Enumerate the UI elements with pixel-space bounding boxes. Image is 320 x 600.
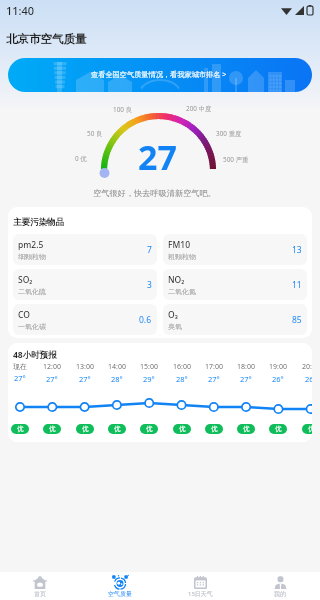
staticText: 二氧化硫 (18, 287, 46, 296)
staticText: 7 (147, 244, 152, 256)
staticText: 200 中度 (186, 104, 212, 113)
button[interactable]: 优 (108, 424, 126, 434)
staticText: 首页 (34, 590, 46, 598)
staticText: NO₂ (168, 274, 185, 286)
button[interactable]: NO₂ (163, 269, 307, 300)
button[interactable]: 优 (269, 424, 287, 434)
staticText: 优 (308, 425, 312, 433)
staticText: 空气质量 (108, 590, 132, 598)
staticText: 优 (243, 425, 250, 433)
staticText: 北京市空气质量 (6, 32, 87, 46)
staticText: 500 严重 (223, 155, 249, 164)
button[interactable]: 优 (11, 424, 29, 434)
staticText: 我的 (274, 590, 286, 598)
staticText: 27° (208, 374, 220, 384)
staticText: 48小时预报 (13, 349, 57, 361)
button[interactable]: 优 (76, 424, 94, 434)
staticText: 优 (49, 425, 56, 433)
staticText: 臭氧 (168, 322, 182, 331)
button[interactable]: 优 (237, 424, 255, 434)
staticText: 17:00 (205, 362, 223, 372)
staticText: 粗颗粒物 (168, 252, 196, 261)
staticText: 3 (147, 279, 152, 291)
staticText: 13 (292, 244, 302, 256)
staticText: 现在 (13, 362, 27, 371)
staticText: 11 (292, 279, 302, 291)
staticText: 300 重度 (216, 129, 242, 138)
staticText: 0.6 (139, 314, 152, 326)
staticText: 18:00 (237, 362, 255, 372)
staticText: 优 (17, 425, 24, 433)
staticText: FM10 (168, 239, 191, 251)
staticText: 0 优 (75, 154, 87, 163)
staticText: 85 (292, 314, 302, 326)
button[interactable]: 优 (173, 424, 191, 434)
other: 15日天气 (194, 576, 207, 589)
button[interactable]: 我的 (240, 572, 320, 600)
staticText: 优 (146, 425, 153, 433)
button[interactable]: 优 (302, 424, 312, 434)
button[interactable]: 空气质量 (80, 572, 160, 600)
staticText: 100 良 (113, 105, 133, 114)
staticText: 15日天气 (188, 590, 213, 598)
button[interactable]: 15日天气 (160, 572, 240, 600)
staticText: 13:00 (76, 362, 94, 372)
staticText: pm2.5 (18, 239, 44, 251)
staticText: 细颗粒物 (18, 252, 46, 261)
staticText: 20:00 (302, 362, 312, 372)
staticText: 19:00 (269, 362, 287, 372)
button[interactable]: O₃ (163, 304, 307, 335)
staticText: 27° (46, 374, 58, 384)
staticText: 28° (111, 374, 123, 384)
button[interactable]: SO₂ (13, 269, 157, 300)
staticText: 27 (138, 134, 177, 180)
staticText: 27° (79, 374, 91, 384)
staticText: 26° (305, 374, 312, 384)
staticText: 16:00 (173, 362, 191, 372)
staticText: 优 (82, 425, 89, 433)
staticText: O₃ (168, 309, 178, 321)
staticText: 优 (114, 425, 121, 433)
button[interactable]: 优 (140, 424, 158, 434)
staticText: 50 良 (87, 129, 103, 138)
button[interactable]: 优 (205, 424, 223, 434)
staticText: 优 (179, 425, 186, 433)
button[interactable]: pm2.5 (13, 234, 157, 265)
staticText: 空气很好，快去呼吸清新空气吧。 (93, 188, 216, 198)
staticText: 优 (275, 425, 282, 433)
other: 空气质量 (113, 576, 127, 589)
staticText: CO (18, 309, 30, 321)
staticText: 主要污染物品 (13, 217, 64, 228)
staticText: 二氧化氮 (168, 287, 196, 296)
button[interactable]: 查看全国空气质量情况，看我家城市排名 > (8, 58, 312, 92)
staticText: 查看全国空气质量情况，看我家城市排名 > (91, 69, 227, 79)
staticText: 27° (240, 374, 252, 384)
staticText: 11:40 (6, 3, 35, 18)
button[interactable]: 优 (43, 424, 61, 434)
staticText: 15:00 (140, 362, 158, 372)
staticText: 一氧化碳 (18, 322, 46, 331)
staticText: 27° (14, 373, 26, 383)
button[interactable]: 首页 (0, 572, 80, 600)
staticText: 26° (272, 374, 284, 384)
button[interactable]: CO (13, 304, 157, 335)
other: 我的 (274, 576, 287, 589)
staticText: 28° (176, 374, 188, 384)
staticText: SO₂ (18, 274, 33, 286)
staticText: 优 (211, 425, 218, 433)
button[interactable]: FM10 (163, 234, 307, 265)
staticText: 29° (143, 374, 155, 384)
staticText: 14:00 (108, 362, 126, 372)
staticText: 12:00 (43, 362, 61, 372)
